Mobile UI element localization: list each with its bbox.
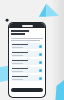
button[interactable] [11, 88, 43, 92]
button[interactable] [11, 67, 43, 73]
button[interactable] [11, 43, 43, 49]
button[interactable] [11, 75, 43, 81]
button[interactable] [11, 59, 43, 65]
button[interactable] [11, 51, 43, 57]
